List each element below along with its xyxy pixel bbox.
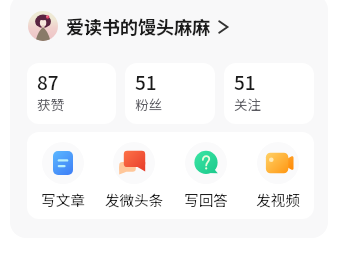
staticText: 粉丝 — [135, 94, 162, 114]
staticText: 51 — [135, 68, 157, 96]
staticText: 87 — [37, 68, 59, 96]
button[interactable]: 87 — [27, 63, 116, 124]
staticText: 发微头条 — [105, 189, 163, 210]
staticText: 发视频 — [256, 189, 300, 210]
button[interactable]: 发微头条 — [98, 132, 170, 219]
button[interactable]: 爱读书的馒头麻麻 — [28, 11, 228, 41]
button[interactable]: 51 — [224, 63, 314, 124]
button[interactable]: 发视频 — [242, 132, 314, 219]
staticText: 获赞 — [37, 94, 64, 114]
button[interactable]: 51 — [125, 63, 215, 124]
staticText: 51 — [234, 68, 256, 96]
staticText: 关注 — [234, 94, 261, 114]
staticText: 爱读书的馒头麻麻 — [66, 13, 210, 39]
staticText: 写文章 — [41, 189, 85, 210]
button[interactable]: 写文章 — [27, 132, 98, 219]
button[interactable]: 写回答 — [170, 132, 242, 219]
staticText: 写回答 — [184, 189, 228, 210]
